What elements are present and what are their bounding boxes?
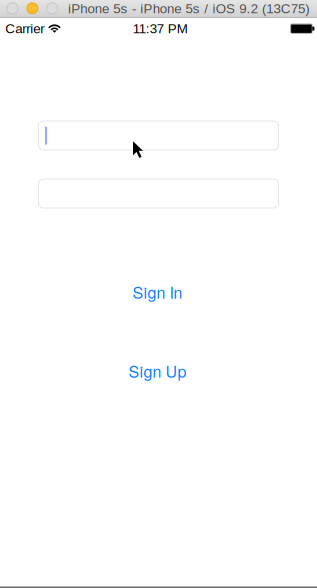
staticText: Carrier [5, 21, 44, 36]
button[interactable]: Password [38, 179, 278, 208]
button[interactable]: Zoom window [43, 0, 61, 17]
staticText: Sign In [132, 280, 182, 303]
button[interactable]: Sign Up [92, 358, 222, 384]
button[interactable]: Username [38, 121, 278, 150]
staticText: Sign Up [128, 359, 186, 382]
staticText: 11:37 PM [133, 21, 188, 36]
button[interactable]: Sign In [92, 279, 222, 305]
staticText: iPhone 5s - iPhone 5s / iOS 9.2 (13C75) [68, 1, 309, 16]
button[interactable]: Minimize window [23, 0, 41, 17]
button[interactable]: Close window [3, 0, 21, 17]
